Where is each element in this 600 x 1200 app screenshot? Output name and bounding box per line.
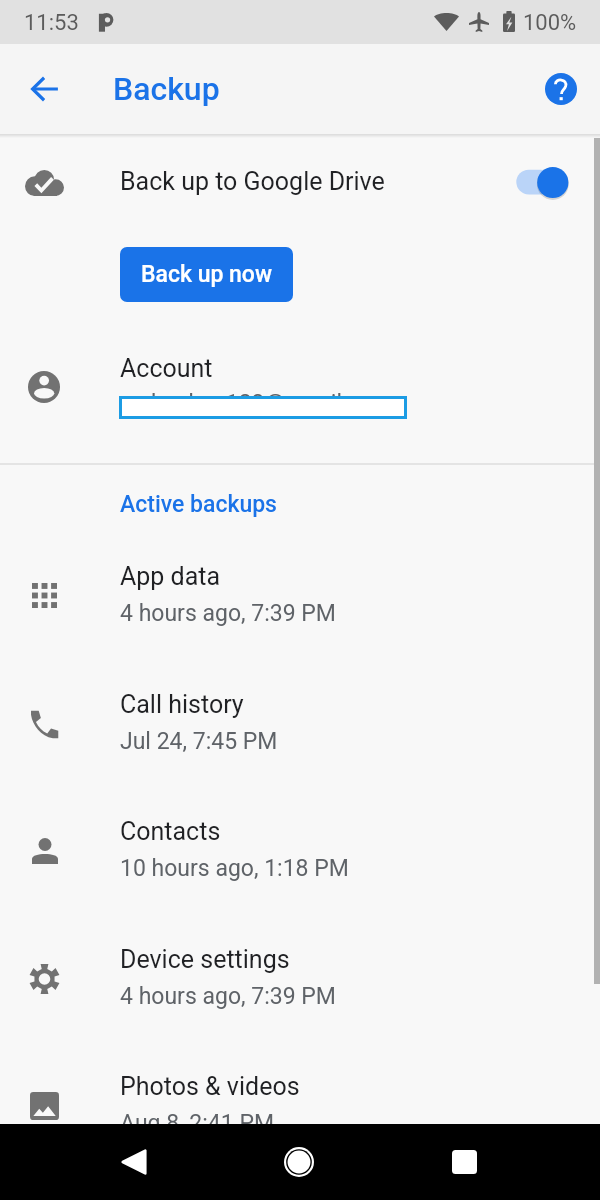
staticText: Account xyxy=(120,354,213,383)
staticText: 11:53 xyxy=(24,10,79,36)
staticText: 4 hours ago, 7:39 PM xyxy=(120,600,336,627)
staticText: 100% xyxy=(523,10,577,36)
staticText: Photos & videos xyxy=(120,1072,300,1101)
staticText: Device settings xyxy=(120,945,290,974)
staticText: Back up to Google Drive xyxy=(120,167,385,196)
staticText: Jul 24, 7:45 PM xyxy=(120,728,278,755)
button[interactable]: Recent apps xyxy=(424,1124,504,1200)
button[interactable]: Back up to Google Drive switch xyxy=(505,160,577,204)
staticText: Aug 8, 2:41 PM xyxy=(120,1110,274,1137)
staticText: Backup xyxy=(113,70,220,108)
button[interactable]: Back xyxy=(94,1124,174,1200)
button[interactable] xyxy=(0,550,600,677)
button[interactable] xyxy=(0,331,600,443)
button[interactable] xyxy=(0,135,600,231)
button[interactable]: Help xyxy=(537,65,585,113)
staticText: Active backups xyxy=(120,491,277,518)
button[interactable]: Back up now xyxy=(120,247,293,302)
button[interactable]: Home xyxy=(259,1124,339,1200)
button[interactable] xyxy=(0,933,600,1060)
button[interactable] xyxy=(0,1060,600,1187)
staticText: App data xyxy=(120,562,221,591)
button[interactable]: Navigate up xyxy=(21,65,69,113)
staticText: Back up now xyxy=(141,261,272,288)
staticText: Contacts xyxy=(120,817,221,846)
button[interactable] xyxy=(0,678,600,805)
staticText: mybackup123@gmail.com xyxy=(120,390,394,417)
staticText: 4 hours ago, 7:39 PM xyxy=(120,983,336,1010)
staticText: 10 hours ago, 1:18 PM xyxy=(120,855,349,882)
button[interactable] xyxy=(0,805,600,932)
staticText: Call history xyxy=(120,690,244,719)
